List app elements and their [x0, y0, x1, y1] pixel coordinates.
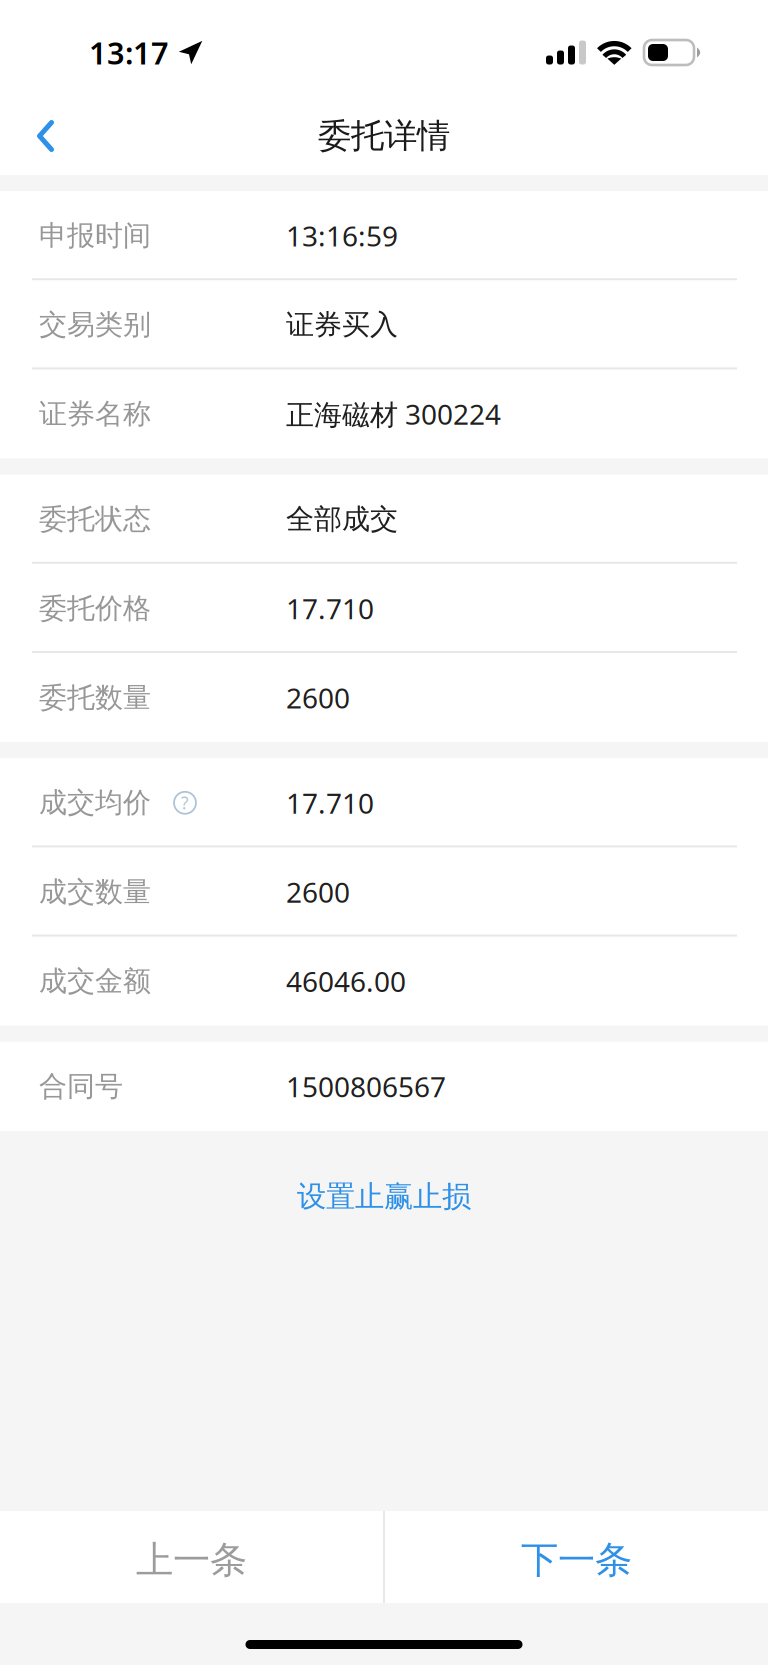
- staticText: 委托数量: [39, 680, 151, 715]
- staticText: 申报时间: [39, 218, 151, 253]
- staticText: 委托详情: [318, 115, 450, 156]
- button[interactable]: 设置止赢止损: [0, 1131, 768, 1262]
- staticText: 13:17: [89, 32, 169, 73]
- staticText: 46046.00: [286, 963, 406, 1000]
- staticText: 13:16:59: [286, 217, 398, 254]
- staticText: 设置止赢止损: [297, 1178, 471, 1214]
- staticText: ?: [181, 791, 189, 814]
- staticText: 成交金额: [39, 964, 151, 998]
- staticText: 交易类别: [39, 308, 151, 342]
- staticText: 17.710: [286, 590, 374, 627]
- staticText: 17.710: [286, 784, 374, 821]
- button[interactable]: 下一条: [385, 1511, 768, 1603]
- staticText: 2600: [286, 679, 350, 716]
- staticText: 正海磁材 300224: [286, 395, 501, 433]
- button[interactable]: 上一条: [0, 1511, 383, 1603]
- staticText: 上一条: [136, 1537, 247, 1583]
- staticText: 全部成交: [286, 502, 398, 536]
- button[interactable]: Back: [0, 97, 88, 175]
- staticText: 2600: [286, 873, 350, 911]
- staticText: 委托价格: [39, 591, 151, 626]
- staticText: 1500806567: [286, 1068, 446, 1105]
- staticText: 合同号: [39, 1069, 123, 1104]
- staticText: 成交数量: [39, 875, 151, 909]
- staticText: 下一条: [521, 1537, 632, 1583]
- staticText: 委托状态: [39, 502, 151, 536]
- staticText: 证券名称: [39, 397, 151, 431]
- staticText: 证券买入: [286, 308, 398, 342]
- staticText: 成交均价: [39, 786, 151, 820]
